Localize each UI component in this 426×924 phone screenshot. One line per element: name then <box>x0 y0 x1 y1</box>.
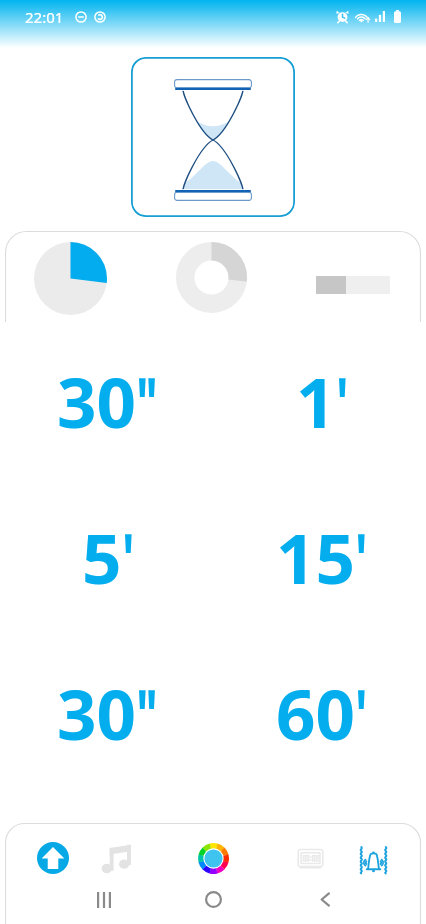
staticText: 15 <box>276 510 355 604</box>
button[interactable]: Start <box>29 834 77 882</box>
button[interactable]: Hourglass <box>131 57 295 217</box>
staticText: 30 <box>57 354 136 448</box>
button[interactable]: Alarm clock <box>286 834 334 882</box>
staticText: 5 <box>82 510 122 604</box>
button[interactable]: Sound <box>94 834 142 882</box>
button[interactable]: 30 seconds <box>10 349 202 453</box>
button[interactable]: Pie progress <box>34 242 107 315</box>
staticText: 1 <box>296 354 336 448</box>
staticText: 30 <box>57 666 136 760</box>
button[interactable]: 60 minutes <box>225 661 417 765</box>
button[interactable]: Bar progress <box>316 276 390 294</box>
button[interactable]: Ringtone <box>349 834 397 882</box>
staticText: 60 <box>276 666 355 760</box>
button[interactable]: 1 minutes <box>225 349 417 453</box>
staticText: 22:01 <box>25 7 64 27</box>
button[interactable]: Ring progress <box>176 242 247 313</box>
button[interactable]: Theme colour <box>189 834 237 882</box>
button[interactable]: 15 minutes <box>225 505 417 609</box>
button[interactable]: 5 minutes <box>11 505 203 609</box>
button[interactable]: 30 seconds <box>10 661 202 765</box>
